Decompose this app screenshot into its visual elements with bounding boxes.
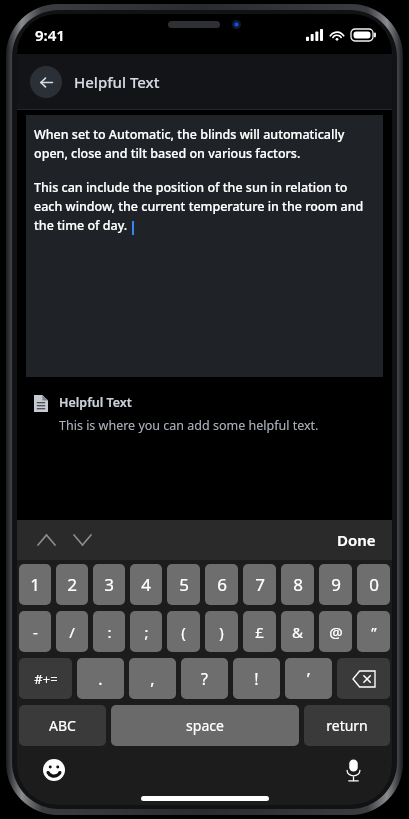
staticText: ” — [371, 622, 377, 642]
button[interactable]: Voice input — [338, 755, 368, 785]
button[interactable]: 3 — [93, 564, 125, 605]
button[interactable]: ’ — [285, 658, 332, 699]
button[interactable]: Done — [329, 524, 384, 556]
button[interactable]: @ — [319, 611, 352, 652]
button[interactable]: 2 — [56, 564, 88, 605]
button[interactable]: Backspace — [337, 658, 390, 699]
staticText: ! — [254, 668, 259, 690]
staticText: 3 — [104, 573, 114, 596]
button[interactable]: 0 — [357, 564, 390, 605]
staticText: : — [107, 622, 112, 642]
button[interactable]: , — [129, 658, 176, 699]
staticText: Done — [337, 530, 376, 550]
button[interactable]: ” — [357, 611, 390, 652]
button[interactable]: #+= — [19, 658, 72, 699]
staticText: 1 — [30, 573, 40, 596]
button[interactable]: £ — [243, 611, 276, 652]
staticText: Helpful Text — [74, 72, 160, 92]
button[interactable]: & — [281, 611, 314, 652]
button[interactable]: return — [304, 705, 390, 746]
staticText: ( — [181, 622, 186, 642]
staticText: 8 — [293, 573, 303, 596]
staticText: space — [186, 716, 224, 735]
staticText: 2 — [67, 573, 77, 596]
staticText: #+= — [34, 670, 58, 688]
button[interactable]: . — [77, 658, 124, 699]
button[interactable]: 7 — [243, 564, 276, 605]
button[interactable]: ; — [130, 611, 162, 652]
button[interactable]: ? — [181, 658, 228, 699]
staticText: This can include the position of the sun… — [34, 179, 375, 233]
staticText: When set to Automatic, the blinds will a… — [34, 126, 375, 161]
staticText: ) — [219, 622, 224, 642]
staticText: 9:41 — [35, 25, 65, 45]
button[interactable]: ) — [205, 611, 238, 652]
button[interactable]: - — [19, 611, 51, 652]
button[interactable]: ABC — [19, 705, 106, 746]
button[interactable]: 9 — [319, 564, 352, 605]
staticText: 5 — [179, 573, 189, 596]
staticText: & — [292, 622, 303, 642]
button[interactable]: When set to Automatic, the blinds will a… — [26, 115, 383, 377]
staticText: / — [69, 622, 75, 642]
staticText: 7 — [255, 573, 265, 596]
staticText: 0 — [369, 573, 379, 596]
staticText: Helpful Text — [59, 394, 132, 411]
staticText: 9 — [331, 573, 341, 596]
button[interactable]: space — [111, 705, 299, 746]
staticText: return — [326, 716, 368, 735]
staticText: 4 — [141, 573, 151, 596]
staticText: ’ — [307, 668, 310, 690]
button[interactable]: Next field — [67, 525, 97, 555]
staticText: ? — [201, 668, 208, 690]
button[interactable]: : — [93, 611, 125, 652]
button[interactable]: 8 — [281, 564, 314, 605]
staticText: ABC — [49, 716, 76, 735]
staticText: - — [33, 622, 38, 642]
staticText: 6 — [217, 573, 227, 596]
button[interactable]: 4 — [130, 564, 162, 605]
staticText: ; — [144, 622, 149, 642]
button[interactable]: 6 — [205, 564, 238, 605]
staticText: . — [98, 668, 103, 690]
button[interactable]: Emoji — [39, 755, 69, 785]
staticText: £ — [255, 622, 264, 642]
button[interactable]: 1 — [19, 564, 51, 605]
staticText: This is where you can add some helpful t… — [59, 417, 319, 434]
button[interactable]: / — [56, 611, 88, 652]
button[interactable]: Back — [30, 66, 62, 98]
button[interactable]: ! — [233, 658, 280, 699]
button[interactable]: ( — [167, 611, 200, 652]
staticText: @ — [329, 622, 343, 642]
button[interactable]: Previous field — [31, 525, 61, 555]
button[interactable]: 5 — [167, 564, 200, 605]
staticText: , — [150, 668, 155, 690]
